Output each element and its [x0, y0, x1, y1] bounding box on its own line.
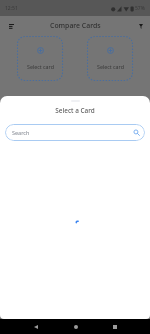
button[interactable]: Filter: [134, 20, 147, 33]
button[interactable]: Search: [5, 124, 145, 141]
button[interactable]: Recents: [108, 320, 121, 333]
staticText: Compare Cards: [50, 21, 101, 30]
staticText: Select card: [27, 63, 54, 70]
staticText: Select a Card: [0, 106, 150, 115]
staticText: Search: [12, 129, 30, 136]
staticText: 12:51: [5, 5, 18, 12]
button[interactable]: Select card: [17, 36, 63, 81]
button[interactable]: Back: [29, 320, 42, 333]
button[interactable]: Home: [69, 320, 82, 333]
button[interactable]: Menu: [5, 20, 18, 33]
staticText: Select card: [97, 63, 124, 70]
staticText: 57%: [135, 5, 145, 12]
other: Search: [133, 129, 140, 136]
button[interactable]: Select card: [87, 36, 133, 81]
